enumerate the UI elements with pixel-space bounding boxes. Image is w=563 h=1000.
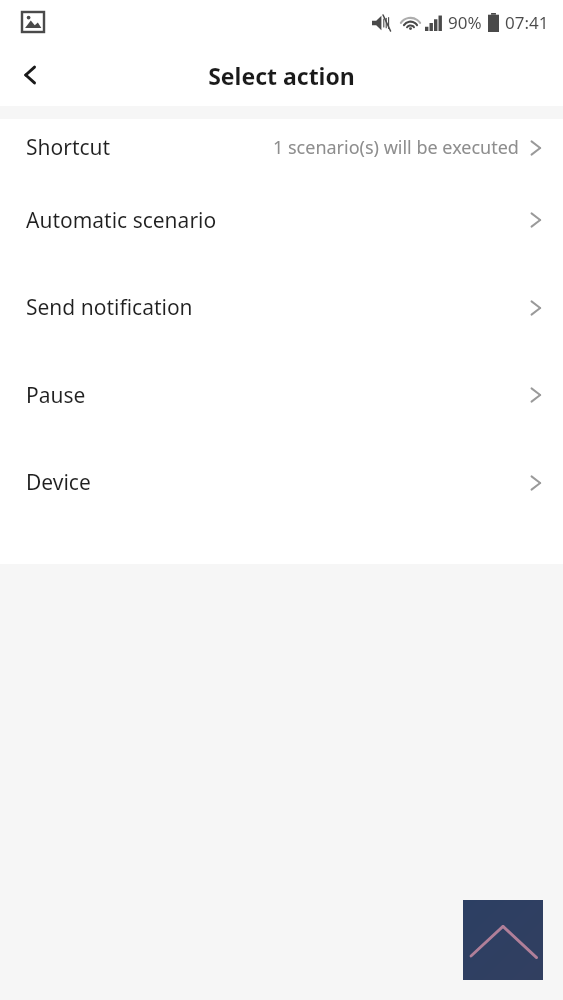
- staticText: Shortcut: [26, 133, 111, 162]
- button[interactable]: Back: [0, 44, 62, 106]
- staticText: 07:41: [505, 11, 549, 34]
- button[interactable]: Shortcut: [0, 119, 563, 176]
- staticText: Pause: [26, 381, 86, 410]
- button[interactable]: Automatic scenario: [0, 176, 563, 264]
- staticText: 90%: [448, 11, 482, 34]
- button[interactable]: Preview image: [463, 900, 543, 980]
- button[interactable]: Device: [0, 439, 563, 526]
- staticText: Send notification: [26, 293, 193, 322]
- button[interactable]: Pause: [0, 351, 563, 439]
- staticText: Automatic scenario: [26, 206, 217, 235]
- staticText: Device: [26, 468, 91, 497]
- staticText: Select action: [208, 60, 355, 91]
- staticText: 1 scenario(s) will be executed: [273, 135, 519, 160]
- button[interactable]: Send notification: [0, 264, 563, 351]
